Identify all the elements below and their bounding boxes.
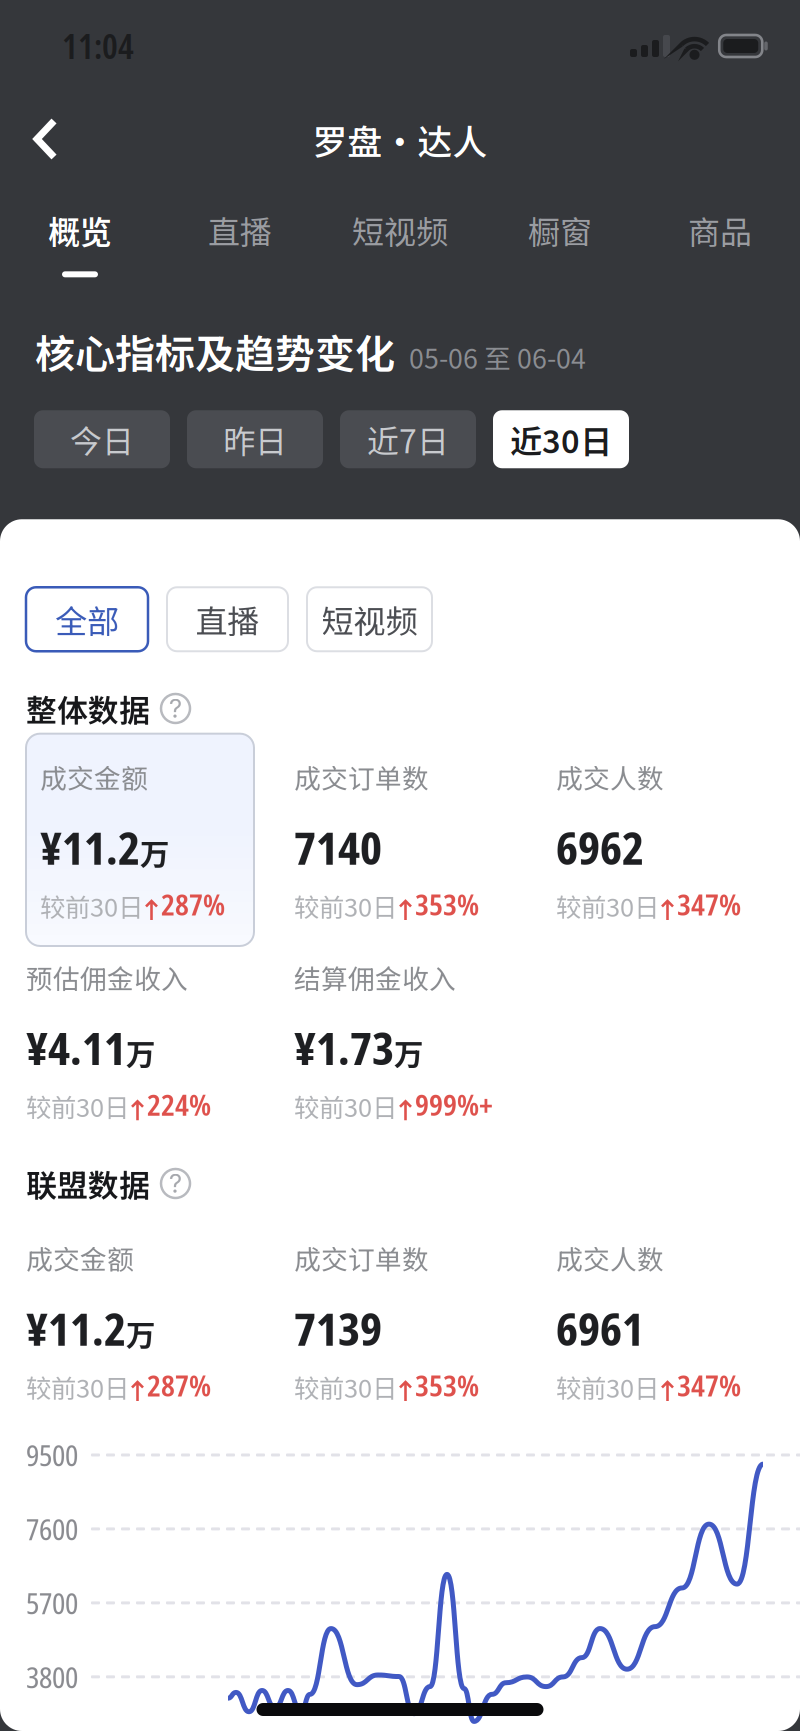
staticText: 万 [140,831,169,873]
staticText: 万 [126,1031,155,1073]
button[interactable]: 直播 [160,207,320,277]
staticText: 万 [126,1312,155,1354]
staticText: 结算佣金收入 [294,958,456,997]
staticText: 联盟数据 [26,1161,150,1206]
button[interactable]: 近7日 [340,410,476,468]
staticText: 5700 [26,1583,78,1623]
button[interactable]: 全部 [26,587,148,651]
staticText: 3800 [26,1657,78,1697]
staticText: 直播 [208,207,272,253]
staticText: 商品 [688,207,752,253]
staticText: 999%+ [415,1084,493,1124]
staticText: 短视频 [352,207,448,253]
staticText: 罗盘·达人 [312,115,487,165]
staticText: 核心指标及趋势变化 [35,322,395,380]
staticText: ? [169,1168,182,1199]
staticText: 较前30日 [556,1368,659,1405]
button[interactable]: 近30日 [493,410,629,468]
button[interactable]: 今日 [34,410,170,468]
staticText: 万 [394,1031,423,1073]
staticText: 7600 [26,1509,78,1549]
staticText: 较前30日 [294,1368,397,1405]
staticText: 353% [415,1365,479,1405]
staticText: 05-06 至 06-04 [409,338,586,376]
staticText: 成交金额 [26,1239,134,1277]
button[interactable]: Back [32,117,62,163]
button[interactable]: 商品 [640,207,800,277]
staticText: ? [169,693,182,724]
staticText: 成交金额 [40,758,148,796]
staticText: 11:04 [62,23,134,69]
staticText: 347% [677,884,741,924]
staticText: 7140 [294,816,382,878]
staticText: 近7日 [367,416,449,462]
button[interactable]: 直播 [167,587,288,651]
staticText: 成交订单数 [294,758,429,796]
staticText: 6962 [556,816,644,878]
button[interactable]: 昨日 [187,410,323,468]
button[interactable]: 概览 [0,207,160,277]
button[interactable]: 短视频 [307,587,432,651]
staticText: ¥1.73 [294,1017,394,1078]
button[interactable]: 短视频 [320,207,480,277]
staticText: 6961 [556,1297,644,1359]
staticText: 短视频 [321,596,417,642]
staticText: 347% [677,1365,741,1405]
staticText: 较前30日 [40,887,143,924]
staticText: 较前30日 [294,887,397,924]
staticText: 橱窗 [528,207,592,253]
staticText: 直播 [195,596,259,642]
staticText: 较前30日 [294,1088,397,1124]
staticText: 353% [415,884,479,924]
button[interactable]: Help [160,1168,191,1199]
staticText: 287% [161,884,225,924]
staticText: 今日 [70,416,134,462]
staticText: 成交订单数 [294,1239,429,1277]
staticText: 9500 [26,1435,78,1475]
staticText: ¥11.2 [26,1297,126,1359]
staticText: 成交人数 [556,758,664,796]
button[interactable]: 橱窗 [480,207,640,277]
staticText: 全部 [55,596,119,642]
staticText: 7139 [294,1297,382,1359]
staticText: 成交人数 [556,1239,664,1277]
staticText: ¥4.11 [26,1017,126,1078]
staticText: ¥11.2 [40,816,140,878]
staticText: 较前30日 [26,1088,129,1124]
staticText: 较前30日 [26,1368,129,1405]
staticText: 较前30日 [556,887,659,924]
staticText: 287% [147,1365,211,1405]
staticText: 概览 [48,207,112,253]
staticText: 昨日 [223,416,287,462]
staticText: 近30日 [510,416,612,462]
staticText: 整体数据 [26,686,150,731]
staticText: 224% [147,1084,211,1124]
button[interactable]: Help [160,693,191,724]
staticText: 预估佣金收入 [26,958,188,997]
